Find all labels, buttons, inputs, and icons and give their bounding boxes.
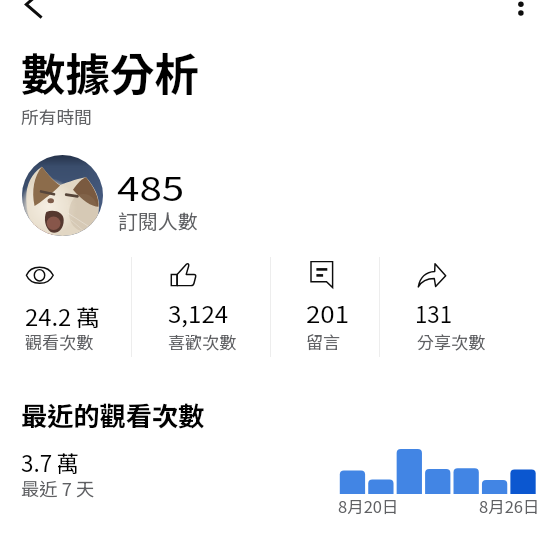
button[interactable]: 3,124	[160, 256, 270, 356]
staticText: 數據分析	[21, 39, 200, 103]
staticText: 分享次數	[417, 329, 486, 354]
button[interactable]: 131	[409, 256, 529, 356]
staticText: 訂閱人數	[118, 206, 198, 235]
button[interactable]: Back	[6, 0, 46, 26]
staticText: 24.2 萬	[25, 300, 101, 332]
button[interactable]: 24.2 萬	[17, 256, 127, 356]
staticText: 留言	[306, 329, 341, 354]
staticText: 最近的觀看次數	[21, 396, 205, 434]
staticText: 8月26日	[479, 494, 540, 518]
staticText: 觀看次數	[25, 329, 94, 354]
button[interactable]: More options	[504, 0, 536, 18]
button[interactable]: 201	[298, 256, 408, 356]
staticText: 最近 7 天	[21, 475, 95, 501]
staticText: 所有時間	[21, 103, 92, 129]
staticText: 131	[415, 297, 453, 329]
staticText: 201	[306, 297, 350, 329]
staticText: 8月20日	[338, 494, 399, 518]
staticText: 3,124	[168, 297, 228, 329]
staticText: 3.7 萬	[21, 446, 79, 478]
staticText: 喜歡次數	[168, 329, 237, 354]
staticText: 485	[117, 164, 185, 210]
